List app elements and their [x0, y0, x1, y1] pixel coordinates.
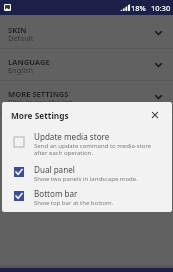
button[interactable]: SKIN — [0, 17, 173, 49]
button[interactable]: Dual panel — [2, 164, 172, 188]
staticText: 10:30 — [151, 3, 171, 13]
staticText: LANGUAGE — [8, 57, 50, 67]
staticText: English — [8, 65, 34, 75]
staticText: More Settings — [11, 110, 69, 121]
button[interactable]: Bottom bar — [2, 188, 172, 212]
staticText: Bottom bar — [34, 188, 78, 199]
button[interactable]: MORE SETTINGS — [0, 81, 173, 113]
staticText: Click to see the list — [8, 97, 73, 107]
button[interactable]: Update media store — [2, 131, 172, 165]
button[interactable]: Close — [146, 106, 164, 124]
staticText: Default — [8, 33, 34, 43]
staticText: Show two panels in landscape mode. — [34, 175, 138, 183]
staticText: 18% — [131, 3, 146, 13]
staticText: Update media store — [34, 131, 110, 142]
button[interactable]: LANGUAGE — [0, 49, 173, 81]
staticText: SKIN — [8, 25, 27, 35]
staticText: Send an update command to media-store af… — [34, 142, 152, 157]
staticText: Show top bar at the bottom. — [34, 199, 114, 207]
staticText: MORE SETTINGS — [8, 89, 69, 99]
staticText: Dual panel — [34, 164, 75, 175]
